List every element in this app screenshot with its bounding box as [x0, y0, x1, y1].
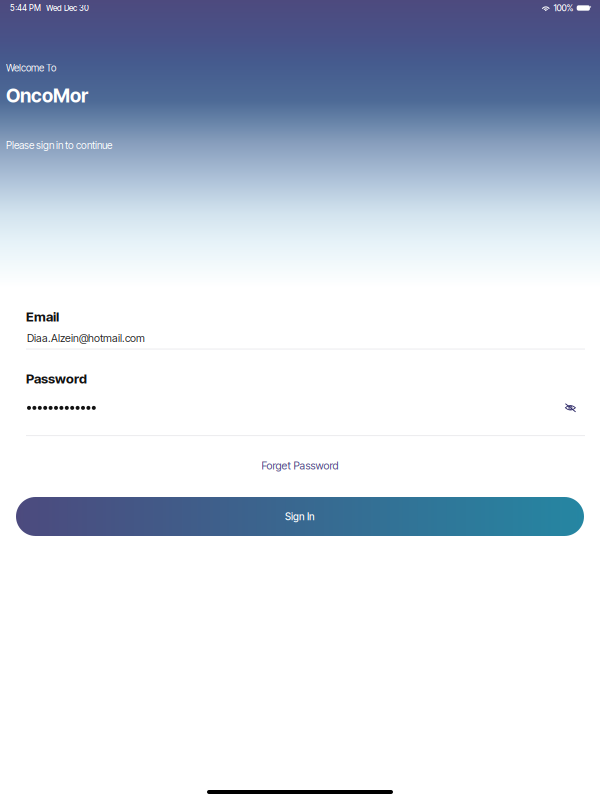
staticText: Wed Dec 30 — [46, 3, 89, 13]
staticText: Diaa.Alzein@hotmail.com — [27, 332, 145, 344]
button[interactable]: Forget Password — [255, 456, 344, 475]
staticText: Please sign in to continue — [6, 139, 112, 151]
button[interactable]: Sign In — [16, 497, 584, 536]
staticText: Sign In — [285, 510, 315, 522]
staticText: Forget Password — [261, 459, 338, 472]
staticText: Welcome To — [6, 62, 56, 74]
staticText: OncoMor — [6, 84, 88, 107]
staticText: Password — [26, 371, 87, 387]
staticText: Email — [26, 308, 59, 325]
staticText: 100% — [553, 3, 573, 13]
button[interactable]: Show password — [563, 402, 578, 414]
staticText: 5:44 PM — [10, 3, 41, 13]
